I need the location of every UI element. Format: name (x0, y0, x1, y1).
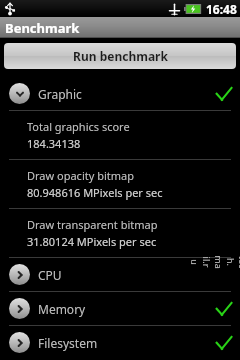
button[interactable]: Total graphics score (0, 111, 240, 159)
staticText: 16:48 (206, 1, 237, 17)
button[interactable]: Run benchmark (4, 43, 236, 69)
button[interactable]: Expand (0, 326, 240, 359)
button[interactable]: Expand (0, 292, 240, 325)
staticText: Run benchmark (73, 48, 168, 64)
other: Expand (9, 298, 30, 319)
staticText: 80.948616 MPixels per sec (27, 185, 163, 200)
staticText: CPU (38, 267, 62, 283)
staticText: Benchmark (5, 19, 80, 37)
button[interactable]: Draw opacity bitmap (0, 160, 240, 208)
staticText: 31.80124 MPixels per sec (27, 234, 157, 249)
staticText: Draw opacity bitmap (27, 168, 134, 183)
other: Expand (9, 332, 30, 353)
staticText: Filesystem (38, 335, 98, 351)
button[interactable]: Expand (0, 258, 240, 291)
staticText: 184.34138 (27, 136, 81, 151)
button[interactable]: Draw transparent bitmap (0, 209, 240, 257)
other: Expand (9, 264, 30, 285)
staticText: Graphic (38, 86, 82, 102)
staticText: Total graphics score (27, 119, 130, 134)
other: Collapse (9, 83, 30, 104)
button[interactable]: Collapse (0, 77, 240, 110)
staticText: Memory (38, 301, 86, 317)
staticText: Draw transparent bitmap (27, 217, 158, 232)
staticText: © hi-tech.mail.ru (189, 255, 240, 269)
